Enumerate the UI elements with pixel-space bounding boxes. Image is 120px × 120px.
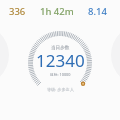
button[interactable]: 8.14 (88, 5, 107, 18)
staticText: 当日步数 (51, 45, 70, 51)
button[interactable]: 1h 42m (40, 5, 74, 18)
staticText: 目标: 10000 (50, 72, 71, 77)
staticText: 336 (9, 5, 26, 18)
staticText: 1h 42m (40, 5, 74, 18)
button[interactable]: 336 (9, 5, 26, 18)
staticText: 等级: 步多达人 (47, 87, 74, 93)
staticText: 8.14 (88, 5, 107, 18)
staticText: 12340 (36, 49, 85, 72)
